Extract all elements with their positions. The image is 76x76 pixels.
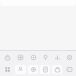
button[interactable]: Settings xyxy=(64,53,74,62)
button[interactable]: Stats xyxy=(52,53,62,62)
button[interactable]: Profile xyxy=(15,65,26,74)
button[interactable]: Favourites xyxy=(28,65,38,74)
button[interactable]: Documents xyxy=(40,65,50,74)
button[interactable]: Apps xyxy=(15,53,26,62)
button[interactable]: Keyboard xyxy=(2,65,13,74)
button[interactable]: Focus xyxy=(28,53,38,62)
button[interactable]: Gallery xyxy=(64,65,74,74)
button[interactable]: Lock xyxy=(2,53,13,62)
button[interactable]: Location xyxy=(40,53,50,62)
button[interactable]: Store xyxy=(52,65,62,74)
